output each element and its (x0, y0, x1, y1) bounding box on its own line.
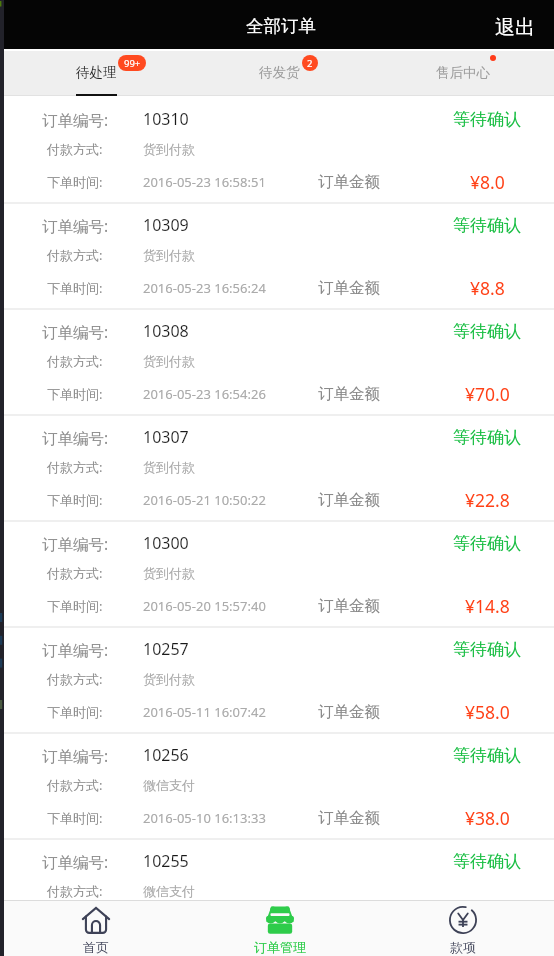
staticText: ¥8.8 (470, 276, 505, 300)
staticText: 订单编号: (42, 851, 109, 872)
staticText: 10309 (143, 214, 189, 236)
staticText: ¥14.8 (465, 594, 510, 618)
staticText: 售后中心 (436, 64, 490, 81)
staticText: 货到付款 (143, 141, 195, 157)
button[interactable]: 退出 (476, 6, 554, 43)
staticText: 10310 (143, 108, 189, 130)
staticText: 2016-05-23 16:56:24 (143, 279, 266, 297)
button[interactable]: 首页 (4, 901, 188, 956)
staticText: 下单时间: (47, 597, 103, 615)
staticText: 微信支付 (143, 883, 195, 899)
staticText: 退出 (495, 15, 535, 40)
staticText: 2016-05-11 16:07:42 (143, 703, 266, 721)
staticText: ¥22.8 (465, 488, 510, 512)
staticText: 10256 (143, 744, 189, 766)
staticText: ¥8.0 (470, 170, 505, 194)
button[interactable]: 订单编号: (4, 96, 554, 202)
staticText: 款项 (450, 939, 476, 955)
staticText: 货到付款 (143, 247, 195, 263)
button[interactable]: 售后中心 (371, 51, 554, 95)
button[interactable]: 待发货 (188, 51, 371, 95)
staticText: 等待确认 (453, 533, 521, 554)
staticText: 付款方式: (47, 564, 103, 582)
staticText: 下单时间: (47, 809, 103, 827)
staticText: 下单时间: (47, 491, 103, 509)
staticText: 等待确认 (453, 109, 521, 130)
button[interactable]: 订单编号: (4, 732, 554, 838)
button[interactable]: 订单编号: (4, 626, 554, 732)
button[interactable]: 订单编号: (4, 520, 554, 626)
staticText: 付款方式: (47, 246, 103, 264)
staticText: 订单编号: (42, 321, 109, 342)
staticText: 等待确认 (453, 851, 521, 872)
staticText: 付款方式: (47, 458, 103, 476)
staticText: 付款方式: (47, 776, 103, 794)
staticText: 货到付款 (143, 459, 195, 475)
staticText: 待发货 (259, 64, 300, 81)
staticText: 付款方式: (47, 670, 103, 688)
staticText: 2016-05-10 16:13:33 (143, 809, 266, 827)
staticText: 订单编号: (42, 109, 109, 130)
staticText: 10307 (143, 426, 189, 448)
staticText: 订单金额 (318, 278, 380, 298)
staticText: 付款方式: (47, 882, 103, 900)
staticText: 等待确认 (453, 745, 521, 766)
staticText: 2016-05-23 16:54:26 (143, 385, 266, 403)
staticText: 10308 (143, 320, 189, 342)
staticText: 2016-05-21 10:50:22 (143, 491, 266, 509)
staticText: 等待确认 (453, 321, 521, 342)
staticText: 订单金额 (318, 702, 380, 722)
staticText: 10257 (143, 638, 189, 660)
button[interactable]: 待处理 (4, 51, 188, 95)
staticText: ¥38.0 (465, 806, 510, 830)
staticText: 货到付款 (143, 671, 195, 687)
staticText: 订单编号: (42, 533, 109, 554)
staticText: 等待确认 (453, 427, 521, 448)
staticText: 10255 (143, 850, 189, 872)
staticText: 下单时间: (47, 279, 103, 297)
button[interactable]: 订单管理 (188, 901, 371, 956)
button[interactable]: 订单编号: (4, 838, 554, 900)
staticText: 订单编号: (42, 639, 109, 660)
staticText: 10300 (143, 532, 189, 554)
staticText: 下单时间: (47, 385, 103, 403)
staticText: 下单时间: (47, 173, 103, 191)
staticText: 订单金额 (318, 384, 380, 404)
staticText: 订单编号: (42, 215, 109, 236)
staticText: 2016-05-23 16:58:51 (143, 173, 266, 191)
staticText: 等待确认 (453, 639, 521, 660)
button[interactable]: 订单编号: (4, 414, 554, 520)
staticText: 等待确认 (453, 215, 521, 236)
staticText: 首页 (83, 939, 109, 955)
staticText: ¥70.0 (465, 382, 510, 406)
staticText: 订单编号: (42, 427, 109, 448)
staticText: 全部订单 (246, 15, 316, 37)
staticText: 待处理 (76, 64, 117, 81)
staticText: 付款方式: (47, 352, 103, 370)
staticText: 订单金额 (318, 172, 380, 192)
button[interactable]: 订单编号: (4, 308, 554, 414)
staticText: 订单管理 (254, 939, 306, 955)
staticText: 微信支付 (143, 777, 195, 793)
button[interactable]: 款项 (371, 901, 554, 956)
staticText: 订单金额 (318, 596, 380, 616)
button[interactable]: 订单编号: (4, 202, 554, 308)
staticText: 订单编号: (42, 745, 109, 766)
staticText: 货到付款 (143, 565, 195, 581)
staticText: 货到付款 (143, 353, 195, 369)
staticText: 2016-05-20 15:57:40 (143, 597, 266, 615)
staticText: 付款方式: (47, 140, 103, 158)
staticText: ¥58.0 (465, 700, 510, 724)
staticText: 订单金额 (318, 808, 380, 828)
staticText: 2 (307, 57, 313, 70)
staticText: 订单金额 (318, 490, 380, 510)
staticText: 99+ (124, 57, 141, 70)
staticText: 下单时间: (47, 703, 103, 721)
